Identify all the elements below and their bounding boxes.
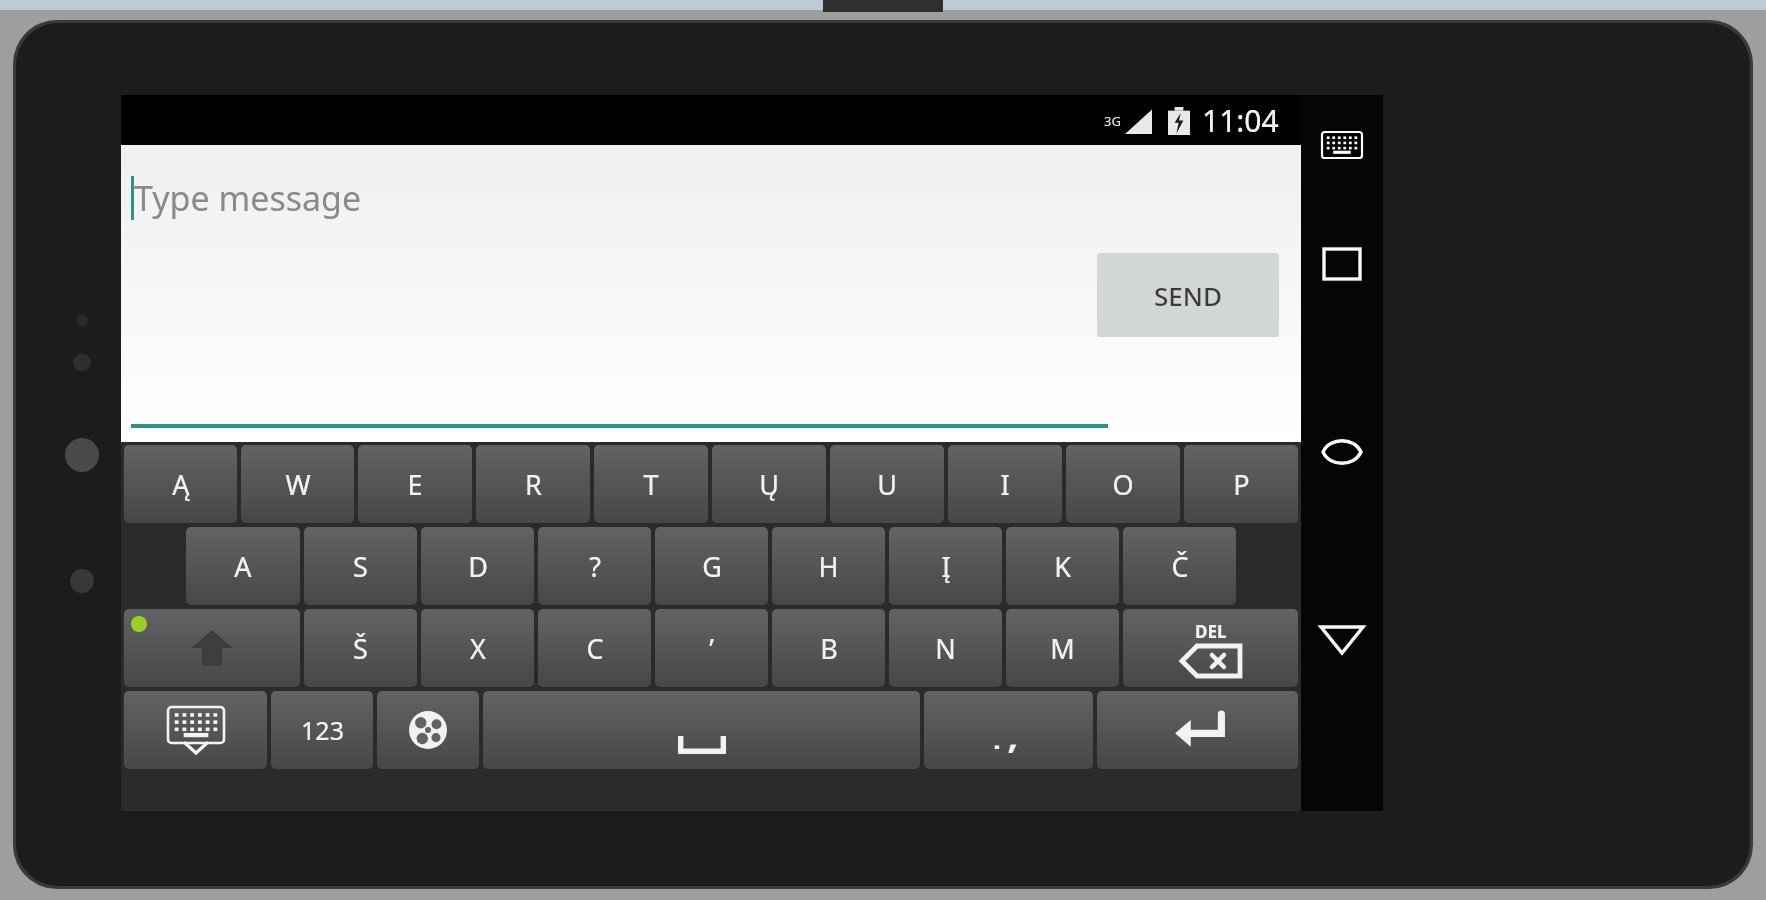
staticText: U: [877, 466, 897, 503]
button[interactable]: 123: [271, 691, 373, 769]
button[interactable]: D: [421, 527, 534, 605]
staticText: G: [702, 548, 722, 585]
button[interactable]: T: [594, 445, 708, 523]
button[interactable]: Space: [483, 691, 920, 769]
staticText: D: [468, 548, 488, 585]
staticText: C: [586, 630, 604, 667]
staticText: H: [818, 548, 839, 585]
staticText: Type message: [134, 175, 362, 221]
button[interactable]: Shift: [124, 609, 300, 687]
button[interactable]: X: [421, 609, 534, 687]
staticText: SEND: [1154, 278, 1222, 313]
button[interactable]: ?: [538, 527, 651, 605]
staticText: Ą: [172, 466, 190, 503]
button[interactable]: Enter: [1097, 691, 1298, 769]
button[interactable]: Home: [1307, 419, 1377, 485]
staticText: R: [525, 466, 542, 503]
staticText: S: [353, 548, 368, 585]
button[interactable]: U: [830, 445, 944, 523]
staticText: T: [643, 466, 659, 503]
staticText: P: [1233, 466, 1250, 503]
button[interactable]: P: [1184, 445, 1298, 523]
button[interactable]: Period and comma: [924, 691, 1093, 769]
staticText: K: [1054, 548, 1071, 585]
button[interactable]: Show keyboard: [1310, 119, 1374, 171]
button[interactable]: Delete: [1123, 609, 1298, 687]
button[interactable]: G: [655, 527, 768, 605]
staticText: 3G: [1104, 112, 1121, 130]
button[interactable]: N: [889, 609, 1002, 687]
button[interactable]: Recent apps: [1307, 231, 1377, 297]
staticText: B: [820, 630, 838, 667]
button[interactable]: H: [772, 527, 885, 605]
button[interactable]: K: [1006, 527, 1119, 605]
button[interactable]: Č: [1123, 527, 1236, 605]
staticText: M: [1050, 630, 1075, 667]
button[interactable]: C: [538, 609, 651, 687]
button[interactable]: Change language: [377, 691, 479, 769]
staticText: X: [470, 630, 486, 667]
staticText: E: [407, 466, 423, 503]
staticText: Į: [941, 548, 951, 585]
staticText: 11:04: [1202, 100, 1279, 141]
staticText: N: [935, 630, 956, 667]
staticText: Ų: [759, 466, 779, 503]
staticText: W: [285, 466, 311, 503]
staticText: ?: [589, 548, 601, 585]
staticText: Č: [1171, 548, 1189, 585]
staticText: A: [234, 548, 252, 585]
button[interactable]: S: [304, 527, 417, 605]
button[interactable]: ’: [655, 609, 768, 687]
button[interactable]: Š: [304, 609, 417, 687]
button[interactable]: Ų: [712, 445, 826, 523]
button[interactable]: Ą: [124, 445, 237, 523]
staticText: ’: [709, 630, 714, 667]
button[interactable]: Į: [889, 527, 1002, 605]
staticText: I: [1000, 466, 1010, 503]
button[interactable]: R: [476, 445, 590, 523]
staticText: O: [1112, 466, 1134, 503]
button[interactable]: Hide keyboard: [124, 691, 267, 769]
button[interactable]: M: [1006, 609, 1119, 687]
button[interactable]: A: [186, 527, 300, 605]
button[interactable]: B: [772, 609, 885, 687]
button[interactable]: O: [1066, 445, 1180, 523]
staticText: DEL: [1195, 620, 1227, 643]
staticText: Š: [353, 630, 368, 667]
button[interactable]: SEND: [1097, 253, 1279, 337]
button[interactable]: E: [358, 445, 472, 523]
button[interactable]: I: [948, 445, 1062, 523]
staticText: 123: [301, 713, 344, 747]
button[interactable]: W: [241, 445, 354, 523]
button[interactable]: Hide keyboard: [1307, 607, 1377, 673]
